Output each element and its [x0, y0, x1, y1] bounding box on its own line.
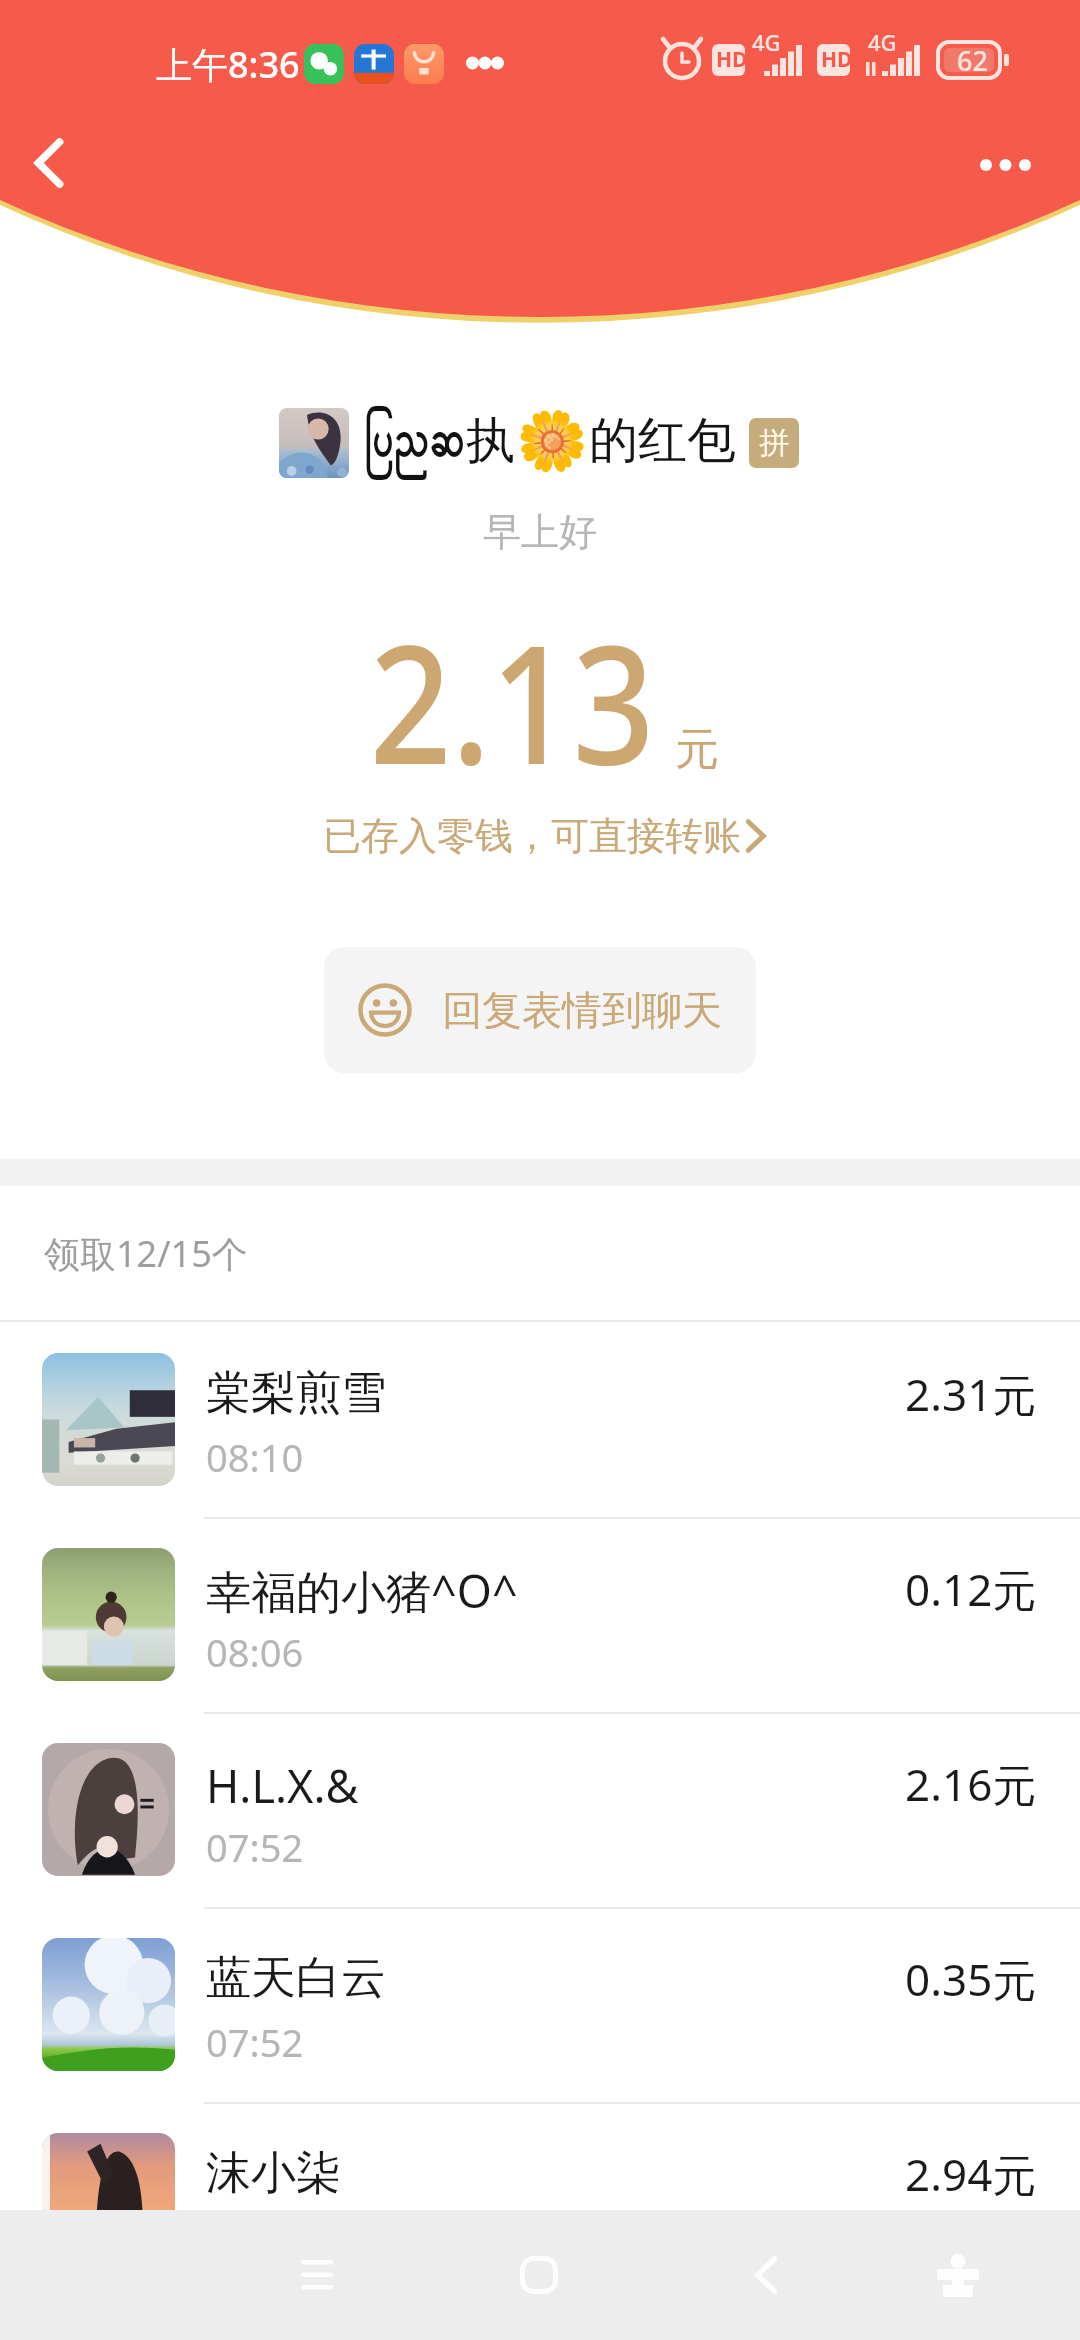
staticText: 蓝天白云 — [206, 1950, 386, 2007]
staticText: 元 — [675, 722, 719, 777]
staticText: 执 — [466, 410, 515, 472]
staticText: 拼 — [759, 424, 789, 462]
staticText: ပြညဆ — [364, 405, 465, 482]
button[interactable]: Home — [479, 2215, 599, 2335]
button[interactable]: 幸福的小猪^O^ — [0, 1517, 1080, 1712]
button[interactable]: 已存入零钱，可直接转账 — [323, 812, 769, 860]
staticText: 0.35元 — [905, 1949, 1037, 2009]
button[interactable]: 棠梨煎雪 — [0, 1322, 1080, 1517]
staticText: HD — [821, 45, 853, 74]
staticText: 4G — [752, 27, 781, 57]
staticText: 上午8:36 — [156, 40, 300, 89]
staticText: 07:52 — [206, 1821, 304, 1873]
staticText: 08:06 — [206, 1626, 304, 1678]
staticText: 早上好 — [483, 508, 597, 556]
staticText: 08:10 — [206, 1431, 304, 1483]
button[interactable]: Back — [4, 118, 94, 208]
staticText: 幸福的小猪^O^ — [206, 1560, 518, 1621]
staticText: 已存入零钱，可直接转账 — [323, 812, 741, 860]
staticText: 回复表情到聊天 — [442, 985, 722, 1035]
button[interactable]: 蓝天白云 — [0, 1907, 1080, 2102]
staticText: 棠梨煎雪 — [206, 1365, 386, 1422]
staticText: 的红包 — [589, 410, 736, 472]
staticText: 2.13 — [369, 590, 655, 812]
staticText: 领取12/15个 — [44, 1229, 248, 1278]
staticText: HD — [716, 45, 748, 74]
staticText: 62 — [957, 42, 988, 79]
button[interactable]: 回复表情到聊天 — [324, 947, 756, 1073]
button[interactable]: H.L.X.& — [0, 1712, 1080, 1907]
button[interactable]: More options — [960, 120, 1050, 210]
staticText: 4G — [868, 27, 897, 57]
staticText: 0.12元 — [905, 1559, 1037, 1619]
staticText: 2.94元 — [905, 2144, 1037, 2204]
staticText: 🌼 — [516, 407, 589, 475]
button[interactable]: 沫小柒 — [0, 2102, 1080, 2297]
staticText: 07:52 — [206, 2016, 304, 2068]
staticText: 2.31元 — [905, 1364, 1037, 1424]
staticText: 2.16元 — [905, 1754, 1037, 1814]
staticText: 沫小柒 — [206, 2145, 341, 2202]
staticText: H.L.X.& — [206, 1755, 359, 1816]
button[interactable]: Accessibility — [898, 2215, 1018, 2335]
